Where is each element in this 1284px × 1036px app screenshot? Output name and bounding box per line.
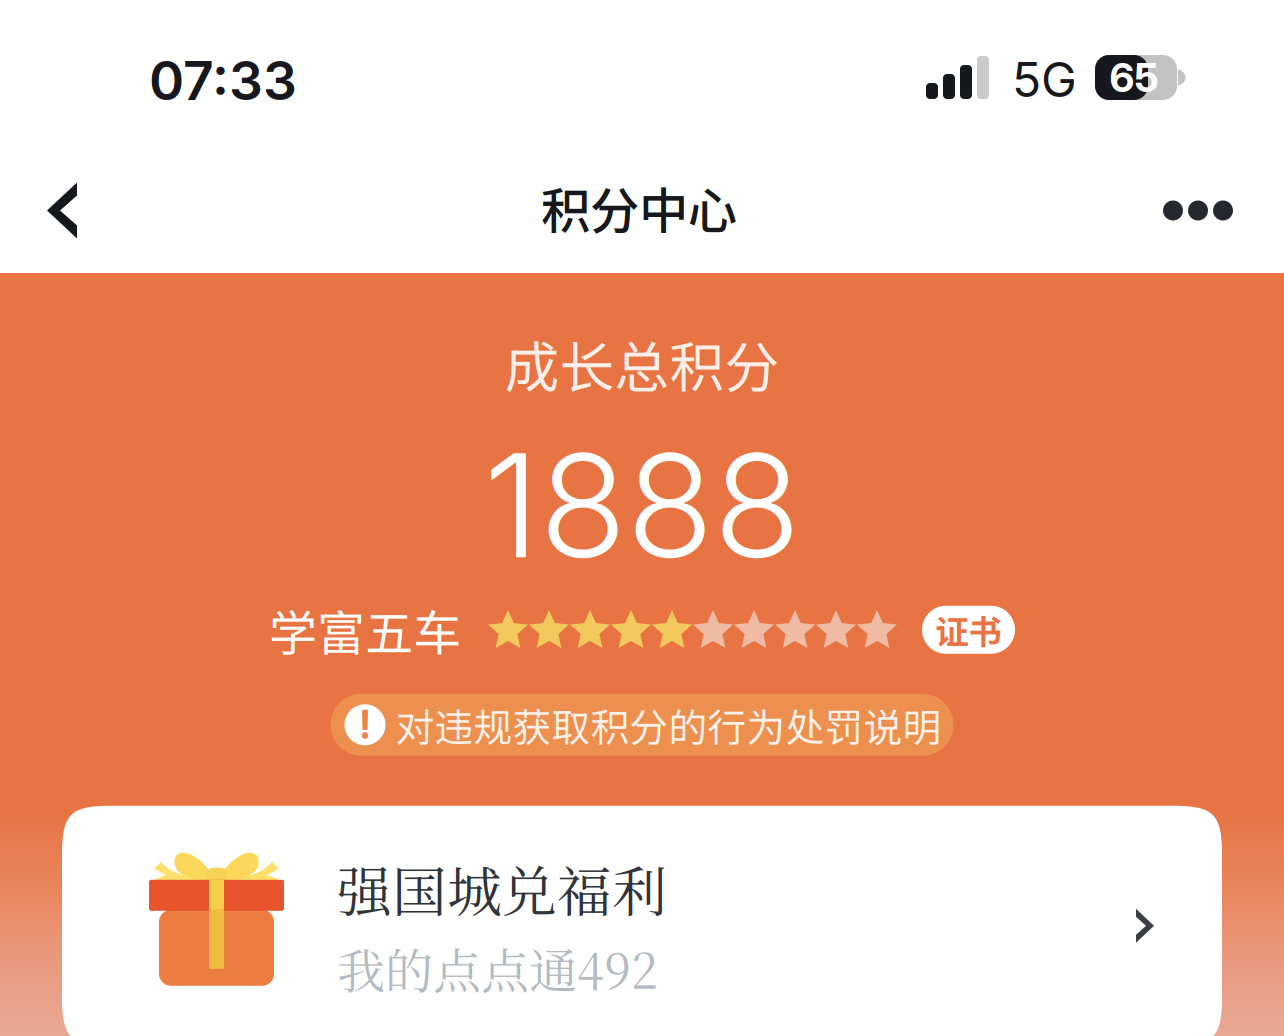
staticText: 证书 — [935, 606, 1001, 654]
button[interactable]: ! — [330, 694, 953, 756]
button[interactable]: 强国城兑福利 — [62, 806, 1222, 1036]
staticText: 65 — [1109, 53, 1158, 102]
button[interactable]: Back — [16, 160, 116, 260]
staticText: 1888 — [483, 419, 800, 592]
staticText: 07:33 — [149, 48, 297, 113]
staticText: 积分中心 — [541, 172, 737, 243]
staticText: 我的点点通492 — [337, 934, 658, 1003]
staticText: 强国城兑福利 — [337, 849, 667, 928]
button[interactable]: 证书 — [922, 606, 1015, 654]
staticText: 学富五车 — [269, 595, 461, 664]
staticText: 成长总积分 — [504, 324, 779, 403]
staticText: ! — [360, 701, 370, 748]
staticText: 5G — [1012, 50, 1077, 109]
button[interactable]: More options — [1136, 160, 1260, 260]
staticText: 对违规获取积分的行为处罚说明 — [395, 697, 941, 753]
